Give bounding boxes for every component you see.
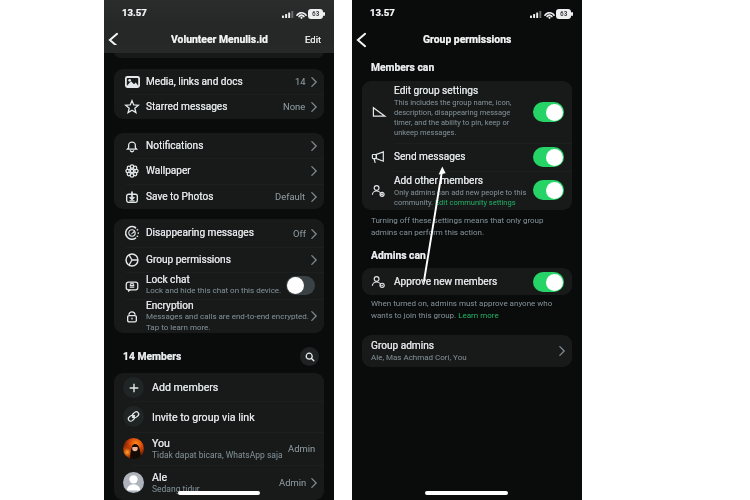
button[interactable]: Group admins — [362, 335, 572, 367]
button[interactable]: Approve new members — [362, 268, 572, 295]
staticText: Starred messages — [146, 101, 228, 113]
button[interactable]: Starred messages — [114, 94, 324, 119]
staticText: Send messages — [394, 151, 466, 163]
staticText: Save to Photos — [146, 191, 214, 203]
staticText: Volunteer Menulis.id — [171, 33, 268, 45]
staticText: Default — [275, 191, 306, 202]
staticText: Group permissions — [146, 254, 231, 266]
button[interactable]: Add members — [114, 373, 324, 401]
button[interactable]: Permission toggle — [533, 147, 564, 167]
staticText: Encryption — [146, 300, 194, 312]
staticText: None — [283, 101, 306, 112]
button[interactable]: Encryption — [114, 299, 324, 333]
staticText: Invite to group via link — [152, 411, 255, 423]
staticText: Group admins — [371, 340, 434, 352]
staticText: 13.57 — [122, 7, 147, 18]
staticText: Add other members — [394, 175, 484, 187]
staticText: 14 Members — [123, 350, 182, 362]
staticText: Edit — [305, 34, 322, 45]
staticText: When turned on, admins must approve anyo… — [371, 299, 561, 320]
button[interactable]: Invite to group via link — [114, 401, 324, 432]
button[interactable]: Search members — [300, 347, 319, 366]
button[interactable]: Permission toggle — [533, 272, 564, 292]
staticText: Off — [293, 228, 306, 239]
staticText: Sedang tidur — [152, 484, 200, 494]
staticText: Ale — [152, 471, 168, 483]
staticText: Group permissions — [423, 33, 512, 45]
staticText: Admin — [288, 443, 316, 454]
staticText: Ale, Mas Achmad Cori, You — [371, 353, 467, 362]
button[interactable]: Edit group settings — [362, 81, 572, 143]
staticText: Admins can — [371, 249, 426, 261]
button[interactable]: Back — [102, 29, 124, 51]
staticText: Only admins can add new people to this c… — [394, 188, 534, 206]
staticText: Edit group settings — [394, 85, 479, 97]
staticText: Approve new members — [394, 276, 498, 288]
staticText: Messages and calls are end-to-end encryp… — [146, 312, 309, 332]
staticText: You — [152, 437, 170, 449]
button[interactable]: Save to Photos — [114, 184, 324, 209]
button[interactable]: Notifications — [114, 133, 324, 158]
button[interactable]: Edit — [301, 31, 326, 48]
staticText: Tidak dapat bicara, WhatsApp saja — [152, 450, 283, 460]
button[interactable]: Lock chat — [114, 272, 324, 299]
staticText: 63 — [312, 10, 320, 18]
staticText: Lock and hide this chat on this device. — [146, 286, 282, 295]
staticText: 13.57 — [370, 7, 395, 18]
staticText: 63 — [560, 10, 568, 18]
staticText: This includes the group name, icon, desc… — [394, 98, 521, 136]
button[interactable]: Group permissions — [114, 247, 324, 272]
button[interactable]: Lock chat toggle — [286, 276, 315, 295]
staticText: Members can — [371, 61, 435, 73]
staticText: 14 — [295, 76, 306, 87]
button[interactable]: Add other members — [362, 171, 572, 210]
button[interactable]: Wallpaper — [114, 158, 324, 184]
button[interactable]: Media, links and docs — [114, 69, 324, 94]
staticText: Admin — [279, 477, 307, 488]
button[interactable]: Back — [350, 29, 372, 51]
button[interactable]: You — [114, 432, 324, 465]
staticText: Wallpaper — [146, 165, 191, 177]
button[interactable]: Send messages — [362, 143, 572, 171]
staticText: Media, links and docs — [146, 76, 243, 88]
staticText: Notifications — [146, 140, 204, 152]
staticText: Disappearing messages — [146, 227, 254, 239]
button[interactable]: Disappearing messages — [114, 219, 324, 247]
staticText: Add members — [152, 381, 219, 393]
button[interactable]: Permission toggle — [533, 102, 564, 122]
staticText: Lock chat — [146, 274, 190, 286]
staticText: Turning off these settings means that on… — [371, 216, 559, 237]
button[interactable]: Permission toggle — [533, 180, 564, 200]
button[interactable]: Ale — [114, 465, 324, 500]
